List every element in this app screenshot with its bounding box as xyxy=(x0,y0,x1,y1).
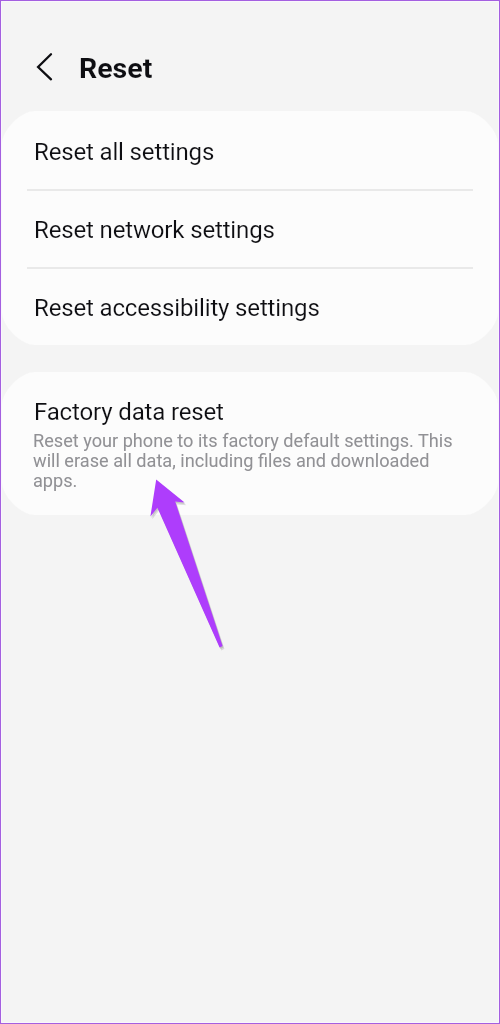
staticText: Reset xyxy=(79,52,153,85)
button[interactable]: Back xyxy=(22,45,66,89)
button[interactable]: Reset accessibility settings xyxy=(2,267,498,345)
button[interactable]: Reset network settings xyxy=(2,189,498,267)
button[interactable]: Reset all settings xyxy=(2,111,498,189)
staticText: Reset your phone to its factory default … xyxy=(33,430,457,491)
staticText: Reset accessibility settings xyxy=(34,294,320,322)
button[interactable]: Factory data reset xyxy=(2,372,498,515)
staticText: Reset network settings xyxy=(34,216,275,244)
staticText: Factory data reset xyxy=(34,398,224,426)
staticText: Reset all settings xyxy=(34,138,215,166)
